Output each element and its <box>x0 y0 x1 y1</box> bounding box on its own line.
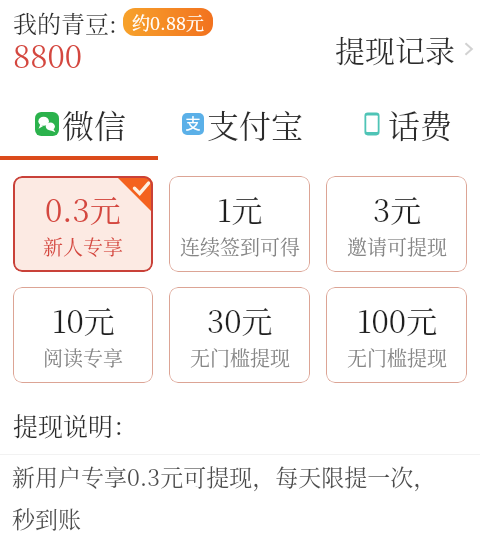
staticText: 话费 <box>388 101 453 147</box>
staticText: 无门槛提现 <box>190 343 290 372</box>
button[interactable]: WeChat <box>35 95 127 153</box>
staticText: 邀请可提现 <box>347 232 447 261</box>
staticText: 100元 <box>357 297 438 342</box>
button[interactable]: 10元 <box>13 287 153 383</box>
button[interactable]: 3元 <box>326 176 467 272</box>
staticText: 新人专享 <box>43 232 123 261</box>
staticText: 8800 <box>13 32 83 77</box>
staticText: 我的青豆: <box>13 5 117 39</box>
staticText: 阅读专享 <box>43 343 123 372</box>
other: Alipay <box>182 113 204 135</box>
button[interactable]: 提现记录 <box>329 21 478 76</box>
button[interactable]: Alipay <box>182 95 304 153</box>
staticText: 1元 <box>217 186 263 231</box>
staticText: 支 <box>185 113 201 134</box>
staticText: 约0.88元 <box>132 9 204 35</box>
staticText: 0.3元 <box>45 186 121 231</box>
button[interactable]: 30元 <box>169 287 310 383</box>
button[interactable]: 100元 <box>326 287 467 383</box>
staticText: 30元 <box>207 297 273 342</box>
staticText: 微信 <box>62 101 127 147</box>
staticText: 3元 <box>373 186 422 231</box>
staticText: 支付宝 <box>207 101 304 147</box>
staticText: 无门槛提现 <box>347 343 447 372</box>
other: Phone bill <box>359 111 385 137</box>
other: WeChat <box>35 112 59 136</box>
button[interactable]: Phone bill <box>359 95 453 153</box>
button[interactable]: 1元 <box>169 176 310 272</box>
staticText: 提现记录 <box>335 27 455 70</box>
staticText: 10元 <box>52 297 115 342</box>
staticText: 提现说明： <box>13 407 139 443</box>
staticText: 连续签到可得 <box>180 232 300 261</box>
button[interactable]: 0.3元 <box>13 176 153 272</box>
staticText: 新用户专享0.3元可提现，每天限提一次， 秒到账 <box>12 460 437 534</box>
